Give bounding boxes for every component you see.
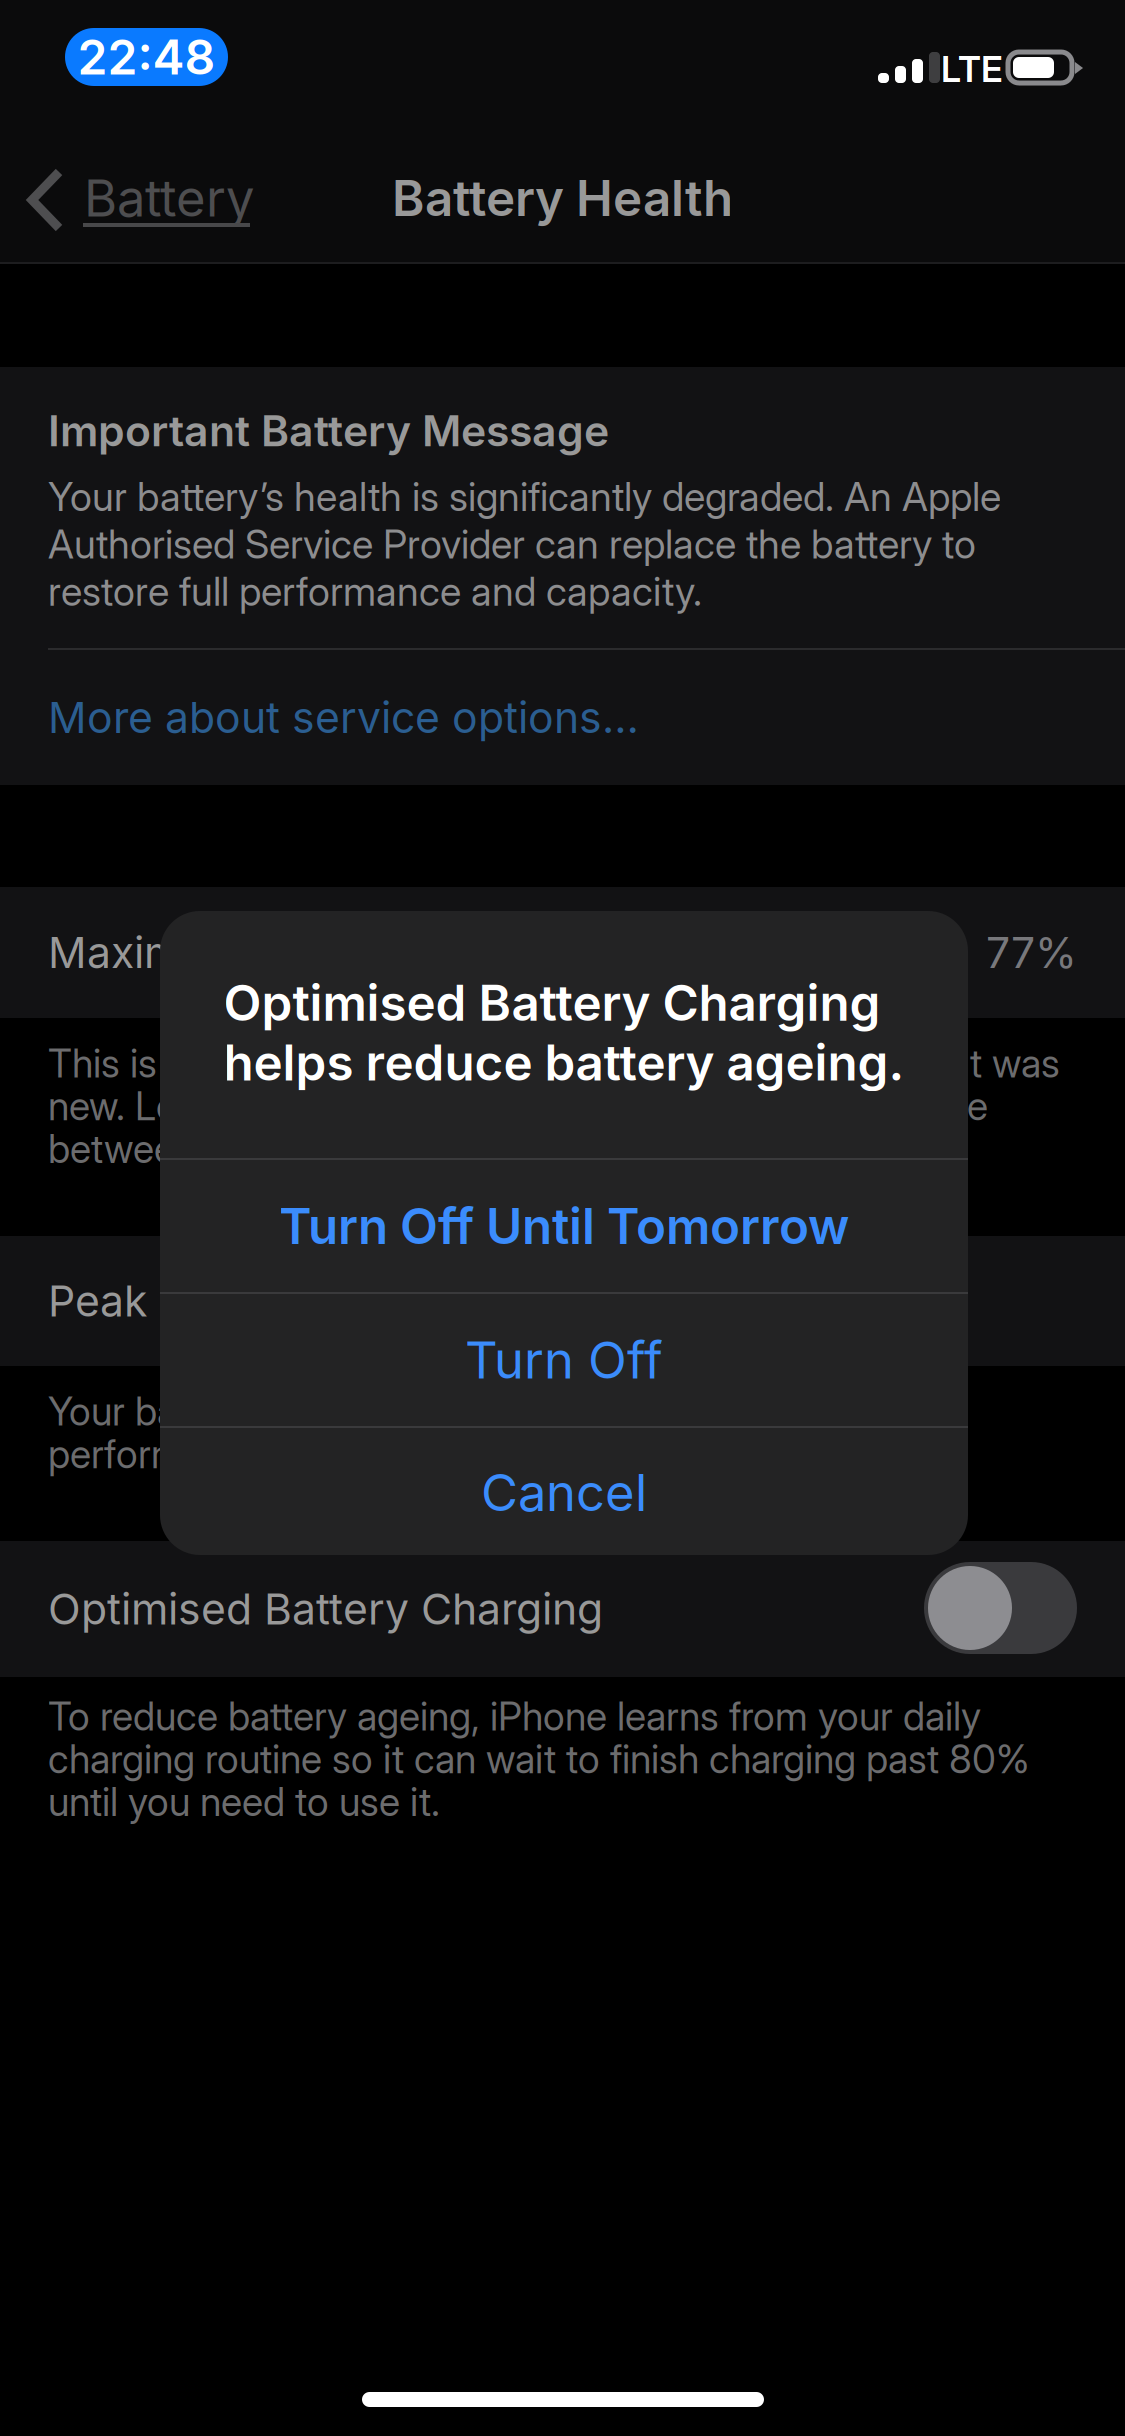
staticText: LTE: [941, 47, 1003, 91]
staticText: Peak Performance Capability: [48, 1275, 634, 1327]
staticText: Your battery is currently supporting nor…: [48, 1388, 862, 1478]
staticText: More about service options…: [48, 692, 639, 743]
staticText: Your battery’s health is significantly d…: [48, 473, 1001, 615]
staticText: Optimised Battery Charging helps reduce …: [223, 973, 904, 1092]
button[interactable]: Cancel: [160, 1428, 968, 1557]
staticText: 22:48: [77, 28, 215, 86]
button[interactable]: Turn Off Until Tomorrow: [160, 1160, 968, 1292]
staticText: 77%: [986, 927, 1077, 978]
staticText: Maximum Capacity: [48, 927, 434, 978]
button[interactable]: Peak Performance Capability: [0, 1236, 1125, 1366]
button[interactable]: Optimised Battery Charging: [924, 1562, 1077, 1654]
button[interactable]: Turn Off: [160, 1294, 968, 1426]
button[interactable]: Battery: [0, 120, 280, 240]
staticText: Optimised Battery Charging: [48, 1583, 603, 1635]
staticText: Important Battery Message: [48, 405, 609, 457]
staticText: Cancel: [481, 1462, 647, 1523]
staticText: To reduce battery ageing, iPhone learns …: [48, 1693, 1030, 1825]
staticText: Battery Health: [392, 168, 733, 228]
staticText: Turn Off: [465, 1329, 663, 1391]
staticText: This is a measure of battery capacity re…: [48, 1040, 1060, 1172]
button[interactable]: Maximum Capacity: [0, 887, 1125, 1018]
staticText: Turn Off Until Tomorrow: [279, 1196, 849, 1256]
staticText: Battery: [84, 167, 254, 229]
button[interactable]: More about service options…: [0, 650, 1029, 785]
